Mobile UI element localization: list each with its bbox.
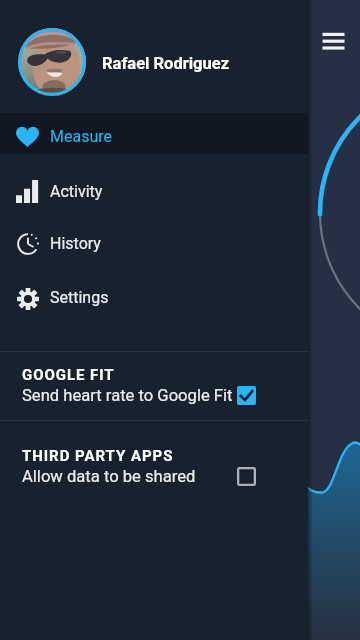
staticText: Send heart rate to Google Fit: [22, 386, 233, 405]
staticText: Allow data to be shared: [22, 467, 196, 486]
button[interactable]: GOOGLE FIT: [0, 352, 308, 420]
staticText: Rafael Rodriguez: [102, 54, 230, 73]
staticText: History: [50, 234, 101, 253]
button[interactable]: THIRD PARTY APPS: [0, 421, 308, 496]
button[interactable]: Settings: [0, 271, 308, 323]
button[interactable]: Disabled: [237, 467, 256, 486]
button[interactable]: History: [0, 219, 308, 271]
button[interactable]: Measure: [0, 113, 308, 154]
staticText: THIRD PARTY APPS: [22, 447, 174, 465]
button[interactable]: Rafael Rodriguez: [0, 0, 308, 113]
staticText: Measure: [50, 127, 112, 146]
button[interactable]: Enabled: [237, 386, 256, 405]
staticText: Settings: [50, 288, 109, 307]
staticText: Activity: [50, 182, 103, 201]
button[interactable]: Activity: [0, 167, 308, 219]
button[interactable]: Open navigation menu: [316, 26, 351, 61]
staticText: GOOGLE FIT: [22, 366, 115, 384]
